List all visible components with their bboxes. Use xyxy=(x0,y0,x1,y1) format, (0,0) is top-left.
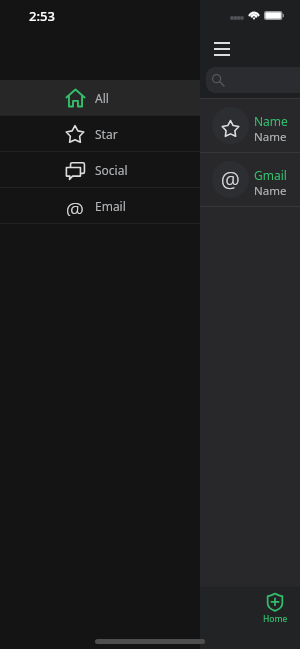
staticText: 2:53 xyxy=(29,7,55,25)
button[interactable]: Name xyxy=(200,99,300,152)
button[interactable]: Social xyxy=(0,152,200,187)
button[interactable]: All xyxy=(0,80,200,115)
button[interactable]: Home xyxy=(250,587,300,625)
button[interactable]: Star xyxy=(0,116,200,151)
staticText: @ xyxy=(221,166,240,195)
staticText: Name xyxy=(254,113,288,129)
button[interactable]: @ xyxy=(200,153,300,206)
staticText: All xyxy=(95,90,109,106)
staticText: Social xyxy=(95,162,128,178)
staticText: @ xyxy=(66,196,84,216)
staticText: Name xyxy=(254,183,287,199)
staticText: Star xyxy=(95,126,118,142)
staticText: Home xyxy=(263,613,288,625)
staticText: Email xyxy=(95,198,126,214)
button[interactable]: Open navigation menu xyxy=(206,33,238,65)
button[interactable]: @ xyxy=(0,188,200,223)
button[interactable]: Search xyxy=(206,67,300,93)
staticText: Gmail xyxy=(254,167,287,183)
staticText: Name xyxy=(254,129,287,145)
